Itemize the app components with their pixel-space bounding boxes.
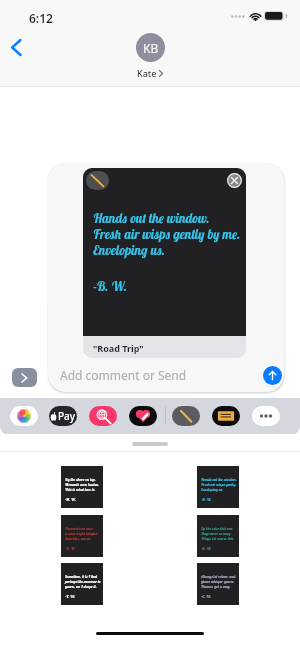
staticText: Sometime, it is I that (65, 574, 98, 579)
staticText: Add comment or Send (60, 367, 187, 383)
button[interactable]: Notes (212, 406, 240, 426)
staticText: Moments soon hasten. (65, 482, 100, 487)
staticText: -B. W. (93, 278, 128, 294)
button[interactable]: Sticker (197, 563, 239, 605)
staticText: -C. W. (201, 594, 212, 599)
staticText: By the shore on top. (65, 477, 96, 482)
staticText: Let the color this one. (201, 526, 234, 531)
button[interactable]: Giphy (89, 406, 117, 426)
staticText: "Road Trip" (93, 342, 144, 354)
button[interactable]: Sticker (61, 515, 103, 557)
staticText: Hands out the window. (201, 477, 237, 482)
button[interactable]: Digital Touch (129, 406, 157, 426)
button[interactable]: Sticker card (83, 168, 246, 358)
button[interactable]: Back (1, 32, 31, 62)
button[interactable]: Add comment or Send (48, 358, 284, 392)
button[interactable]: Apple Pay (49, 406, 77, 426)
staticText: Days more so may space. (201, 531, 237, 536)
staticText: Kate (137, 67, 157, 79)
staticText: KB (143, 40, 159, 56)
button[interactable]: Sticker (61, 563, 103, 605)
button[interactable]: Photos (10, 406, 38, 426)
button[interactable]: Send (263, 366, 282, 385)
staticText: Fresh air wisps gently. (201, 482, 237, 487)
button[interactable]: Close (227, 173, 242, 188)
staticText: perhaps the murmur to (65, 579, 101, 584)
staticText: Always let colour, nest (201, 574, 236, 579)
staticText: Fresh air wisps gently by me. (93, 226, 241, 242)
staticText: Enveloping us. (93, 242, 166, 258)
button[interactable]: Sticker (197, 466, 239, 508)
staticText: This is what love is. (65, 487, 96, 492)
staticText: Sunrides, sunset. (65, 536, 92, 541)
staticText: -R. W. (201, 546, 212, 551)
staticText: Onwards out unto (65, 526, 94, 531)
staticText: Pay (58, 409, 76, 423)
button[interactable]: Expand apps (12, 368, 37, 387)
button[interactable]: KB (118, 33, 182, 79)
staticText: Enveloping us. (201, 487, 224, 492)
button[interactable]: Edit (86, 171, 109, 190)
button[interactable]: More apps (252, 406, 280, 426)
button[interactable]: Sticker (197, 515, 239, 557)
staticText: 6:12 (29, 10, 53, 26)
staticText: yearn, we I shape it. (65, 584, 97, 589)
staticText: -N. W. (65, 546, 76, 551)
staticText: Hands out the window. (93, 210, 210, 226)
staticText: a clear night tangled. (65, 531, 99, 536)
staticText: -B. W. (201, 497, 212, 502)
button[interactable]: Sticker editor (172, 406, 200, 426)
staticText: Ways, let course this. (201, 536, 235, 541)
staticText: -M. W. (65, 497, 76, 502)
button[interactable]: Sticker (61, 466, 103, 508)
staticText: glows whisper gauze. (201, 579, 235, 584)
staticText: -T. W. (65, 594, 76, 599)
staticText: Flames, yet a way. (201, 584, 231, 589)
